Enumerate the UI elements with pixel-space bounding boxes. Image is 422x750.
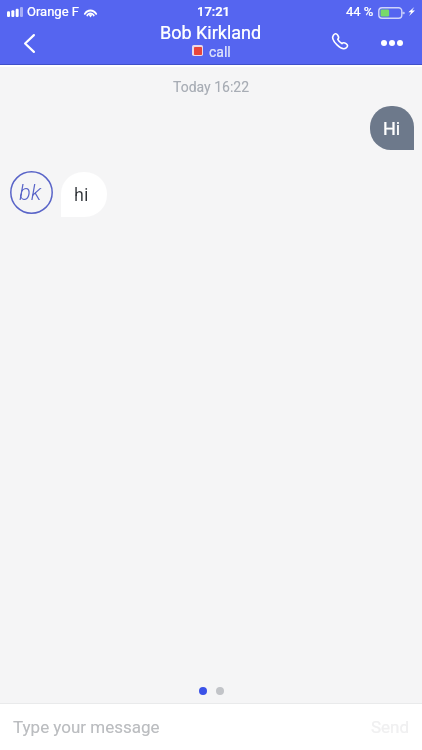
staticText: Type your message <box>13 717 160 737</box>
button[interactable]: Call <box>319 24 368 64</box>
staticText: Orange F <box>27 4 79 19</box>
staticText: Hi <box>383 118 401 139</box>
button[interactable]: Page 2 <box>216 687 224 695</box>
button[interactable]: Type your message <box>0 704 361 750</box>
staticText: Bob Kirkland <box>160 22 262 43</box>
staticText: bk <box>19 180 42 206</box>
button[interactable]: Send <box>361 704 422 750</box>
button[interactable]: More options <box>368 24 415 64</box>
button[interactable]: Back <box>0 24 54 64</box>
button[interactable]: Hi <box>370 106 414 150</box>
staticText: Send <box>371 717 410 737</box>
button[interactable]: Page 1 <box>199 687 207 695</box>
staticText: 44 % <box>346 4 374 19</box>
staticText: call <box>209 44 231 60</box>
staticText: Today 16:22 <box>0 79 422 95</box>
button[interactable]: hi <box>61 172 107 217</box>
staticText: hi <box>74 184 89 205</box>
staticText: 17:21 <box>197 4 230 19</box>
